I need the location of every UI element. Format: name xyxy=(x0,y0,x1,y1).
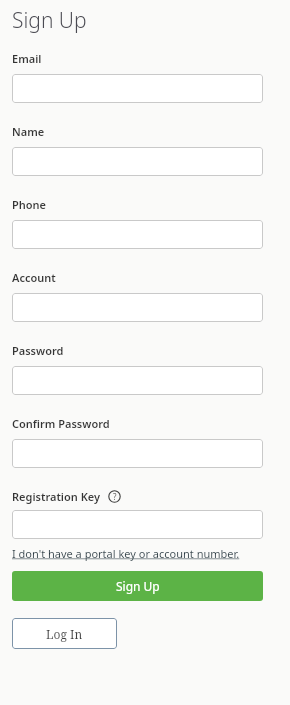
button[interactable] xyxy=(12,147,263,176)
button[interactable] xyxy=(12,510,263,539)
button[interactable]: I don't have a portal key or account num… xyxy=(12,546,240,561)
staticText: Sign Up xyxy=(12,6,87,35)
staticText: ? xyxy=(113,491,117,502)
button[interactable] xyxy=(12,366,263,395)
button[interactable]: Help about registration key xyxy=(108,490,121,503)
button[interactable]: Sign Up xyxy=(12,571,263,601)
button[interactable] xyxy=(12,74,263,103)
staticText: Account xyxy=(12,270,56,285)
staticText: Email xyxy=(12,51,42,66)
staticText: I don't have a portal key or account num… xyxy=(12,546,240,561)
staticText: Name xyxy=(12,124,45,139)
staticText: Sign Up xyxy=(116,578,160,594)
staticText: Registration Key xyxy=(12,489,100,504)
staticText: Confirm Password xyxy=(12,416,110,431)
button[interactable] xyxy=(12,220,263,249)
staticText: Password xyxy=(12,343,64,358)
staticText: Log In xyxy=(46,626,83,642)
button[interactable] xyxy=(12,293,263,322)
button[interactable]: Log In xyxy=(12,618,117,649)
button[interactable] xyxy=(12,439,263,468)
staticText: Phone xyxy=(12,197,47,212)
